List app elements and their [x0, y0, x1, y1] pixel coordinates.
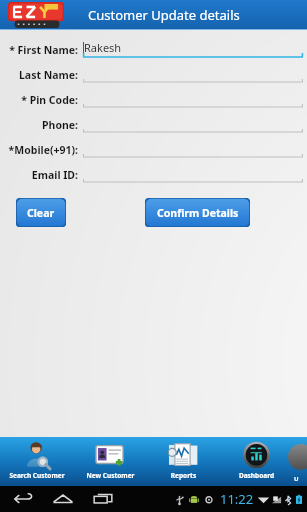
button[interactable]: Dashboard [220, 437, 293, 486]
button[interactable]: * First Name: [0, 37, 307, 62]
staticText: * First Name: [0, 43, 78, 57]
button[interactable]: Back [10, 488, 36, 510]
button[interactable]: *Mobile(+91): [0, 137, 307, 162]
button[interactable]: Reports [147, 437, 220, 486]
button[interactable]: Phone: [0, 112, 307, 137]
staticText: Rakesh [84, 40, 122, 55]
staticText: 11:22 [220, 490, 254, 508]
staticText: Confirm Details [157, 206, 239, 220]
staticText: * Pin Code: [0, 93, 78, 107]
staticText: Clear [27, 206, 55, 220]
button[interactable]: Last Name: [0, 62, 307, 87]
button[interactable]: Email ID: [0, 162, 307, 187]
button[interactable]: * Pin Code: [0, 87, 307, 112]
staticText: Dashboard [220, 471, 293, 480]
button[interactable]: Recent apps [90, 488, 116, 510]
button[interactable]: Users [293, 437, 307, 486]
staticText: Phone: [0, 118, 78, 132]
staticText: Reports [147, 471, 220, 480]
staticText: U [294, 475, 299, 483]
button[interactable]: Confirm Details [145, 198, 250, 227]
button[interactable]: Search Customer [0, 437, 74, 486]
staticText: New Customer [74, 471, 147, 480]
button[interactable]: Clear [16, 198, 66, 227]
staticText: Last Name: [0, 68, 78, 82]
button[interactable]: Home [50, 488, 76, 510]
button[interactable]: New Customer [74, 437, 147, 486]
staticText: Email ID: [0, 168, 78, 182]
button[interactable]: EZY Manage logo [6, 1, 68, 29]
staticText: Customer Update details [88, 6, 240, 24]
staticText: Search Customer [0, 471, 74, 480]
staticText: *Mobile(+91): [0, 143, 78, 157]
